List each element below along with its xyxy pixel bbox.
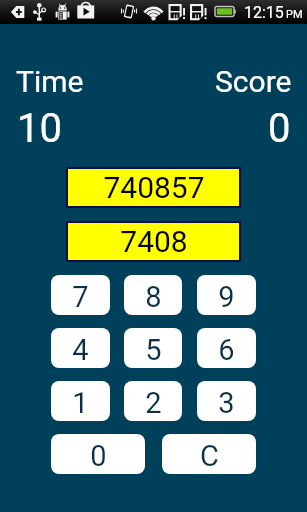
staticText: 10 <box>17 105 62 152</box>
staticText: 6 <box>218 333 235 367</box>
staticText: Time <box>16 64 84 99</box>
button[interactable]: 3 <box>197 381 256 421</box>
button[interactable]: 5 <box>124 328 182 368</box>
button[interactable]: 9 <box>197 275 256 315</box>
staticText: 2 <box>145 386 162 420</box>
staticText: 7408 <box>120 224 188 259</box>
staticText: 5 <box>145 333 162 367</box>
staticText: 8 <box>145 280 162 314</box>
button[interactable]: 0 <box>51 434 145 474</box>
button[interactable]: 2 <box>124 381 182 421</box>
staticText: 12:15 <box>244 3 284 22</box>
button[interactable]: 6 <box>197 328 256 368</box>
button[interactable]: C <box>162 434 256 474</box>
staticText: 7 <box>72 280 89 314</box>
staticText: C <box>200 439 219 473</box>
button[interactable]: 4 <box>51 328 110 368</box>
staticText: 9 <box>218 280 235 314</box>
button[interactable]: 1 <box>51 381 110 421</box>
staticText: 0 <box>268 105 291 152</box>
staticText: 1 <box>72 386 89 420</box>
staticText: 0 <box>90 439 107 473</box>
staticText: PM <box>286 8 303 21</box>
staticText: 3 <box>218 386 235 420</box>
staticText: 740857 <box>103 170 205 205</box>
staticText: 4 <box>72 333 89 367</box>
button[interactable]: 8 <box>124 275 182 315</box>
button[interactable]: 7 <box>51 275 110 315</box>
staticText: Score <box>215 64 292 99</box>
